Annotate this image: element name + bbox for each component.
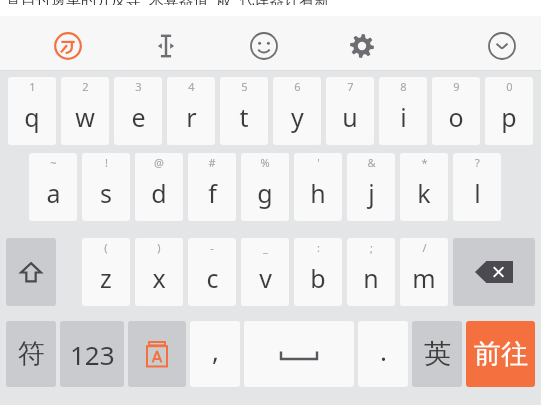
staticText: 8 — [400, 79, 407, 94]
button[interactable]: Input method — [44, 29, 92, 63]
staticText: x — [152, 261, 166, 295]
staticText: t — [239, 100, 249, 134]
button[interactable]: 英 — [412, 321, 462, 387]
staticText: n — [363, 261, 379, 295]
staticText: ' — [317, 155, 320, 170]
staticText: y — [291, 100, 304, 134]
staticText: 7 — [347, 79, 354, 94]
staticText: / — [422, 240, 427, 255]
staticText: f — [208, 176, 217, 210]
button[interactable]: - — [188, 238, 236, 306]
staticText: d — [151, 176, 167, 210]
button[interactable]: 1 — [8, 77, 56, 145]
button[interactable]: 6 — [273, 77, 321, 145]
staticText: ~ — [50, 155, 57, 170]
staticText: i — [400, 100, 407, 134]
staticText: * — [421, 155, 428, 170]
staticText: q — [24, 100, 40, 134]
staticText: p — [501, 100, 517, 134]
staticText: 0 — [506, 79, 513, 94]
button[interactable]: % — [241, 153, 289, 221]
button[interactable]: 3 — [114, 77, 162, 145]
staticText: 5 — [241, 79, 248, 94]
button[interactable]: 2 — [61, 77, 109, 145]
button[interactable]: ! — [82, 153, 130, 221]
staticText: s — [100, 176, 112, 210]
button[interactable]: 9 — [432, 77, 480, 145]
staticText: 3 — [135, 79, 142, 94]
button[interactable]: ( — [82, 238, 130, 306]
button[interactable]: # — [188, 153, 236, 221]
staticText: l — [474, 176, 481, 210]
staticText: ( — [104, 240, 108, 255]
button[interactable]: Dictionary — [128, 321, 186, 387]
staticText: ? — [475, 155, 480, 170]
staticText: 6 — [294, 79, 301, 94]
staticText: 4 — [188, 79, 195, 94]
button[interactable]: Settings — [338, 29, 386, 63]
staticText: r — [186, 100, 197, 134]
button[interactable]: 5 — [220, 77, 268, 145]
staticText: h — [310, 176, 326, 210]
button[interactable]: * — [400, 153, 448, 221]
button[interactable]: 123 — [60, 321, 124, 387]
button[interactable]: _ — [241, 238, 289, 306]
button[interactable]: 4 — [167, 77, 215, 145]
button[interactable]: 前往 — [466, 321, 535, 387]
staticText: c — [206, 261, 219, 295]
button[interactable]: ) — [135, 238, 183, 306]
button[interactable]: ~ — [29, 153, 77, 221]
staticText: g — [257, 176, 273, 210]
button[interactable]: ; — [347, 238, 395, 306]
staticText: % — [260, 155, 270, 170]
button[interactable]: . — [358, 321, 408, 387]
staticText: u — [342, 100, 358, 134]
button[interactable]: : — [294, 238, 342, 306]
button[interactable]: 符 — [6, 321, 56, 387]
staticText: 9 — [453, 79, 460, 94]
button[interactable]: ? — [453, 153, 501, 221]
staticText: 1 — [29, 79, 36, 94]
button[interactable]: , — [190, 321, 240, 387]
staticText: o — [448, 100, 464, 134]
button[interactable]: 7 — [326, 77, 374, 145]
staticText: # — [208, 155, 216, 170]
staticText: j — [368, 176, 375, 210]
staticText: , — [212, 333, 219, 368]
staticText: 前往 — [474, 337, 528, 371]
staticText: 英 — [424, 337, 451, 371]
button[interactable]: Space — [244, 321, 354, 387]
staticText: ! — [105, 155, 108, 170]
staticText: a — [46, 176, 61, 210]
staticText: v — [259, 261, 272, 295]
button[interactable]: @ — [135, 153, 183, 221]
button[interactable]: Move cursor — [142, 29, 190, 63]
staticText: ) — [157, 240, 161, 255]
button[interactable]: 0 — [485, 77, 533, 145]
button[interactable]: ' — [294, 153, 342, 221]
button[interactable]: Emoji — [240, 29, 288, 63]
staticText: ; — [370, 240, 373, 255]
staticText: b — [310, 261, 326, 295]
button[interactable]: 8 — [379, 77, 427, 145]
staticText: : — [317, 240, 320, 255]
staticText: _ — [263, 240, 268, 255]
staticText: w — [75, 100, 95, 134]
staticText: 123 — [70, 337, 115, 372]
staticText: & — [367, 155, 376, 170]
button[interactable]: Shift — [6, 238, 56, 306]
staticText: e — [131, 100, 146, 134]
button[interactable]: Hide keyboard — [478, 29, 526, 63]
button[interactable]: / — [400, 238, 448, 306]
staticText: 符 — [18, 337, 45, 371]
staticText: 查自付邊車的升反导 米算器值 般 代译器计着新 — [6, 0, 330, 5]
staticText: m — [412, 261, 436, 295]
staticText: 2 — [82, 79, 89, 94]
staticText: k — [417, 176, 431, 210]
staticText: z — [100, 261, 112, 295]
staticText: . — [380, 333, 387, 368]
button[interactable]: & — [347, 153, 395, 221]
staticText: @ — [154, 155, 164, 170]
staticText: - — [210, 240, 214, 255]
button[interactable]: Backspace — [453, 238, 535, 306]
